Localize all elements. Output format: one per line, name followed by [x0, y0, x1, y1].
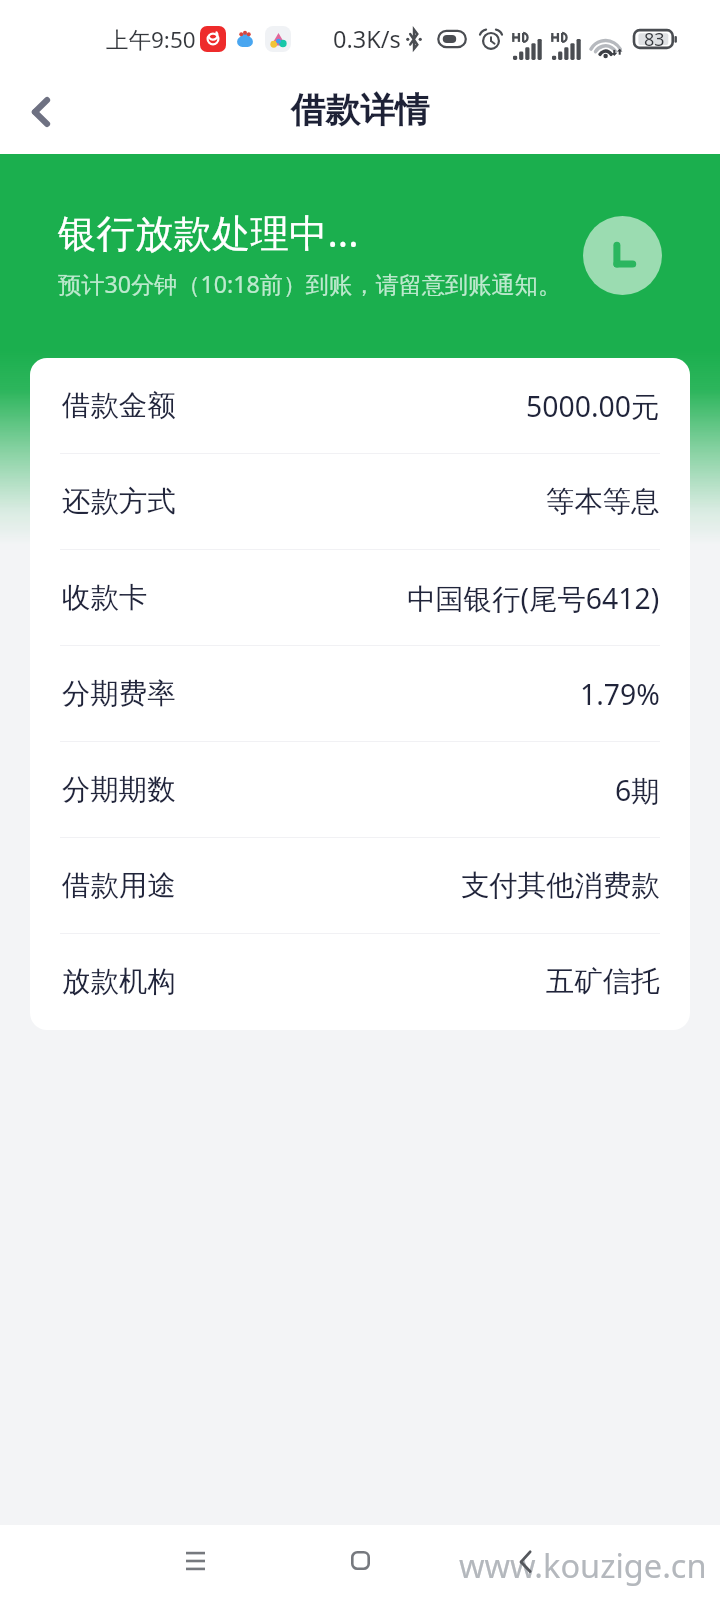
button[interactable]: 分期期数	[30, 742, 690, 838]
staticText: 支付其他消费款	[461, 868, 660, 904]
staticText: 预计30分钟（10:18前）到账，请留意到账通知。	[58, 268, 562, 300]
staticText: 5000.00元	[526, 387, 660, 426]
button[interactable]: 借款用途	[30, 838, 690, 934]
staticText: www.kouzige.cn	[459, 1543, 707, 1587]
button[interactable]: 分期费率	[30, 646, 690, 742]
staticText: 还款方式	[62, 484, 176, 520]
staticText: 中国银行(尾号6412)	[407, 579, 660, 618]
button[interactable]: Home	[316, 1523, 404, 1598]
staticText: 分期费率	[62, 676, 176, 712]
staticText: 银行放款处理中...	[58, 206, 359, 259]
button[interactable]: 收款卡	[30, 550, 690, 646]
staticText: 借款详情	[291, 89, 429, 132]
staticText: 6期	[615, 771, 660, 810]
staticText: 借款金额	[62, 388, 176, 424]
staticText: 等本等息	[546, 484, 660, 520]
button[interactable]: 借款金额	[30, 358, 690, 454]
staticText: 1.79%	[580, 675, 660, 714]
staticText: 上午9:50	[106, 24, 196, 55]
button[interactable]: 放款机构	[30, 934, 690, 1030]
button[interactable]: 还款方式	[30, 454, 690, 550]
button[interactable]: Back	[13, 84, 69, 140]
staticText: 83	[644, 27, 665, 52]
button[interactable]: Recent apps	[151, 1523, 239, 1598]
staticText: 收款卡	[62, 580, 148, 616]
staticText: 五矿信托	[546, 964, 660, 1000]
staticText: 借款用途	[62, 868, 176, 904]
staticText: 放款机构	[62, 964, 176, 1000]
staticText: 分期期数	[62, 772, 176, 808]
staticText: 0.3K/s	[333, 23, 401, 55]
button[interactable]: Back	[481, 1524, 569, 1599]
